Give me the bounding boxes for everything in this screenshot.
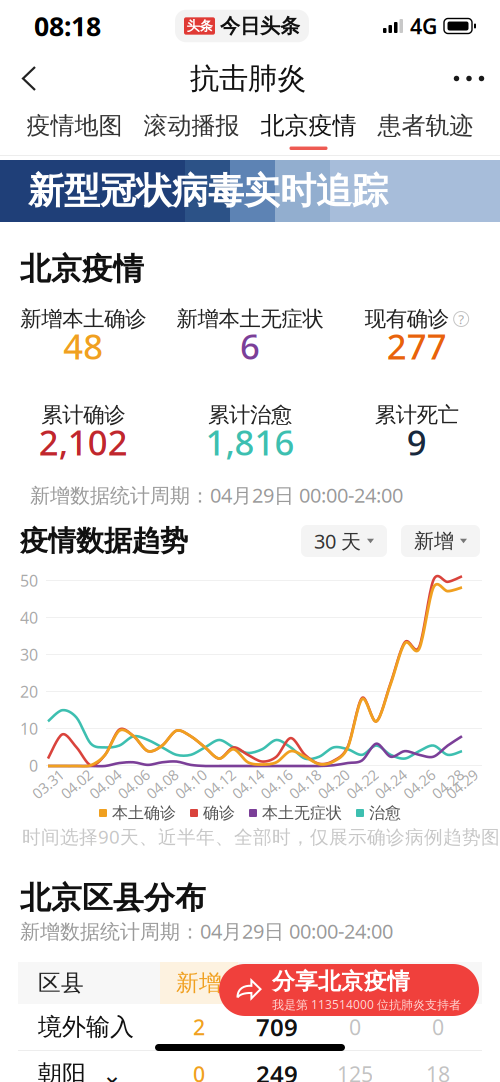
staticText: 新增数据统计周期：04月29日 00:00-24:00 [20, 918, 393, 944]
staticText: 04.10 [173, 774, 209, 794]
staticText: 治愈 [369, 803, 401, 823]
staticText: 48 [63, 323, 103, 369]
staticText: 04.16 [258, 774, 294, 794]
staticText: 04.26 [401, 774, 437, 794]
button[interactable]: 30 天 [301, 525, 387, 557]
button[interactable]: 滚动播报 [133, 105, 250, 155]
staticText: 累计 [254, 969, 300, 997]
staticText: 本土确诊 [112, 803, 176, 823]
staticText: 朝阳 ⌄ [38, 1059, 122, 1082]
staticText: 抗击肺炎 [190, 60, 306, 96]
staticText: 新增数据统计周期：04月29日 00:00-24:00 [30, 482, 403, 508]
staticText: 20 [20, 681, 38, 702]
staticText: 30 [20, 644, 38, 665]
button[interactable]: More [438, 52, 500, 104]
staticText: 04.20 [315, 774, 351, 794]
staticText: 新增 [414, 529, 454, 553]
staticText: 分享北京疫情 [272, 968, 410, 995]
staticText: 新增本土确诊 [20, 306, 146, 332]
staticText: 0 [29, 755, 38, 776]
staticText: 滚动播报 [143, 111, 239, 140]
staticText: 4G [410, 12, 437, 40]
staticText: 50 [20, 570, 38, 591]
staticText: 确诊 [203, 803, 235, 823]
staticText: 04.24 [373, 774, 409, 794]
staticText: 时间选择90天、近半年、全部时，仅展示确诊病例趋势图 [22, 824, 500, 849]
staticText: 新增本土无症状 [176, 306, 323, 332]
staticText: 0 [349, 1013, 361, 1041]
staticText: 区县 [38, 969, 84, 997]
staticText: 04.04 [87, 774, 123, 794]
staticText: 疫情地图 [26, 111, 122, 140]
button[interactable]: Back [0, 52, 58, 104]
button[interactable]: 患者轨迹 [367, 105, 484, 155]
button[interactable]: 北京疫情 [250, 105, 367, 155]
staticText: 治愈 [332, 969, 378, 997]
staticText: 北京疫情 [260, 111, 356, 140]
staticText: 04.18 [287, 774, 323, 794]
staticText: 我是第 113514000 位抗肺炎支持者 [272, 996, 461, 1012]
staticText: 04.29 [444, 774, 480, 794]
staticText: 249 [256, 1058, 298, 1082]
staticText: 累计治愈 [208, 402, 292, 428]
staticText: 04.08 [144, 774, 180, 794]
button[interactable]: 分享北京疫情 [219, 964, 479, 1016]
staticText: 04.02 [59, 774, 95, 794]
staticText: 10 [20, 718, 38, 739]
staticText: 6 [240, 323, 260, 369]
staticText: 今日头条 [220, 14, 300, 38]
staticText: 疫情数据趋势 [20, 524, 188, 558]
staticText: 患者轨迹 [377, 111, 473, 140]
staticText: 1,816 [205, 419, 294, 465]
staticText: 新型冠状病毒实时追踪 [28, 169, 388, 213]
staticText: 125 [337, 1060, 373, 1082]
staticText: 北京疫情 [20, 250, 144, 288]
staticText: 累计死亡 [375, 402, 459, 428]
staticText: 头条 [186, 18, 212, 34]
staticText: 04.14 [230, 774, 266, 794]
staticText: 新增 [176, 969, 222, 997]
staticText: 04.06 [116, 774, 152, 794]
staticText: 08:18 [34, 8, 101, 44]
staticText: 04.22 [344, 774, 380, 794]
staticText: 现有确诊 [365, 306, 449, 332]
staticText: 2,102 [39, 419, 128, 465]
staticText: 本土无症状 [262, 803, 342, 823]
button[interactable]: 新增 [401, 525, 480, 557]
staticText: 9 [407, 419, 427, 465]
staticText: 277 [387, 323, 447, 369]
staticText: 2 [193, 1013, 205, 1041]
staticText: 累计确诊 [41, 402, 125, 428]
staticText: 境外输入 [38, 1012, 134, 1042]
button[interactable]: 疫情地图 [16, 105, 133, 155]
staticText: 03.31 [30, 774, 66, 794]
staticText: 04.12 [201, 774, 237, 794]
staticText: 04.28 [430, 774, 466, 794]
staticText: 北京区县分布 [20, 879, 206, 917]
staticText: 30 天 [314, 528, 361, 554]
staticText: 709 [256, 1011, 298, 1043]
staticText: 40 [20, 607, 38, 628]
staticText: ? [458, 310, 464, 328]
staticText: 18 [426, 1060, 450, 1082]
staticText: 0 [193, 1060, 205, 1082]
staticText: 0 [432, 1013, 444, 1041]
